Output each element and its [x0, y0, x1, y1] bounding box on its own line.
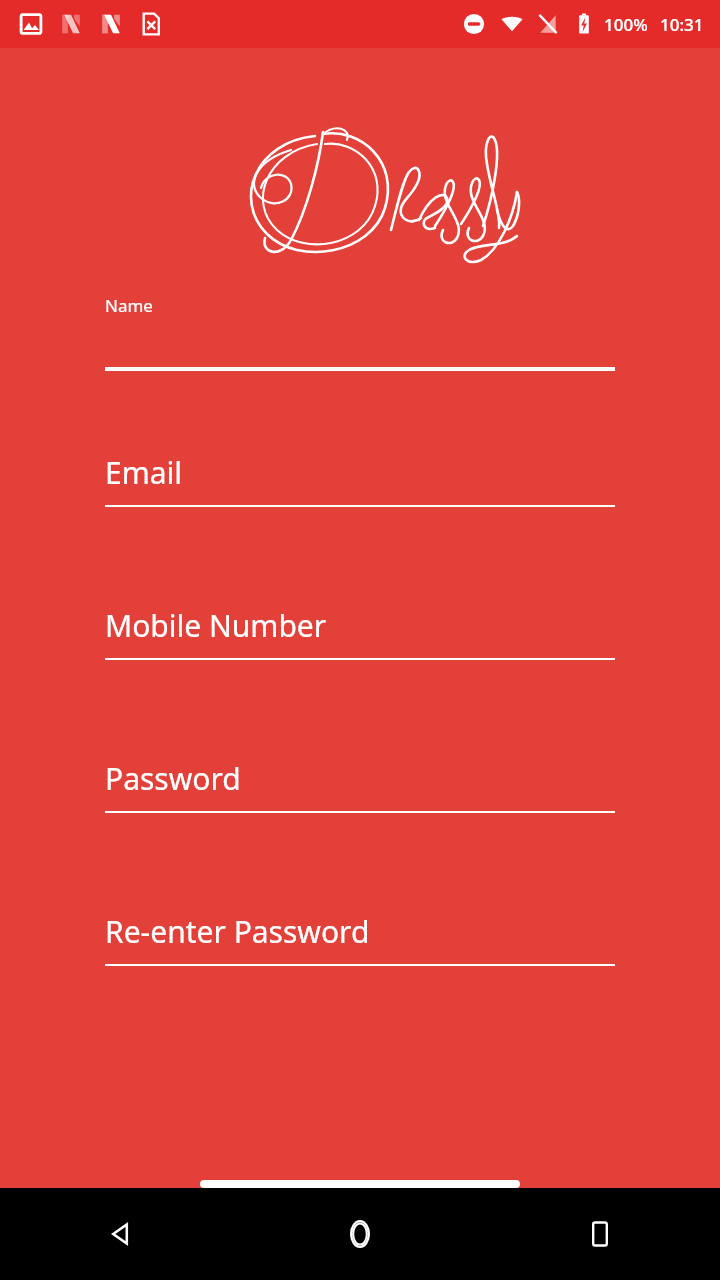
staticText: Name	[105, 294, 153, 317]
staticText: Email	[105, 452, 183, 493]
button[interactable]: Mobile Number	[105, 605, 615, 660]
staticText: 100%	[604, 13, 648, 36]
button[interactable]: Home	[240, 1188, 480, 1280]
staticText: Mobile Number	[105, 605, 327, 646]
button[interactable]: Email	[105, 452, 615, 507]
staticText: 10:31	[660, 13, 704, 36]
button[interactable]: Re-enter Password	[105, 911, 615, 966]
button[interactable]: Sign up	[200, 1180, 520, 1188]
button[interactable]: Back	[0, 1188, 240, 1280]
button[interactable]: Recent apps	[480, 1188, 720, 1280]
button[interactable]: Name	[105, 294, 615, 371]
staticText: Password	[105, 758, 241, 799]
staticText: Re-enter Password	[105, 911, 370, 952]
button[interactable]: Password	[105, 758, 615, 813]
